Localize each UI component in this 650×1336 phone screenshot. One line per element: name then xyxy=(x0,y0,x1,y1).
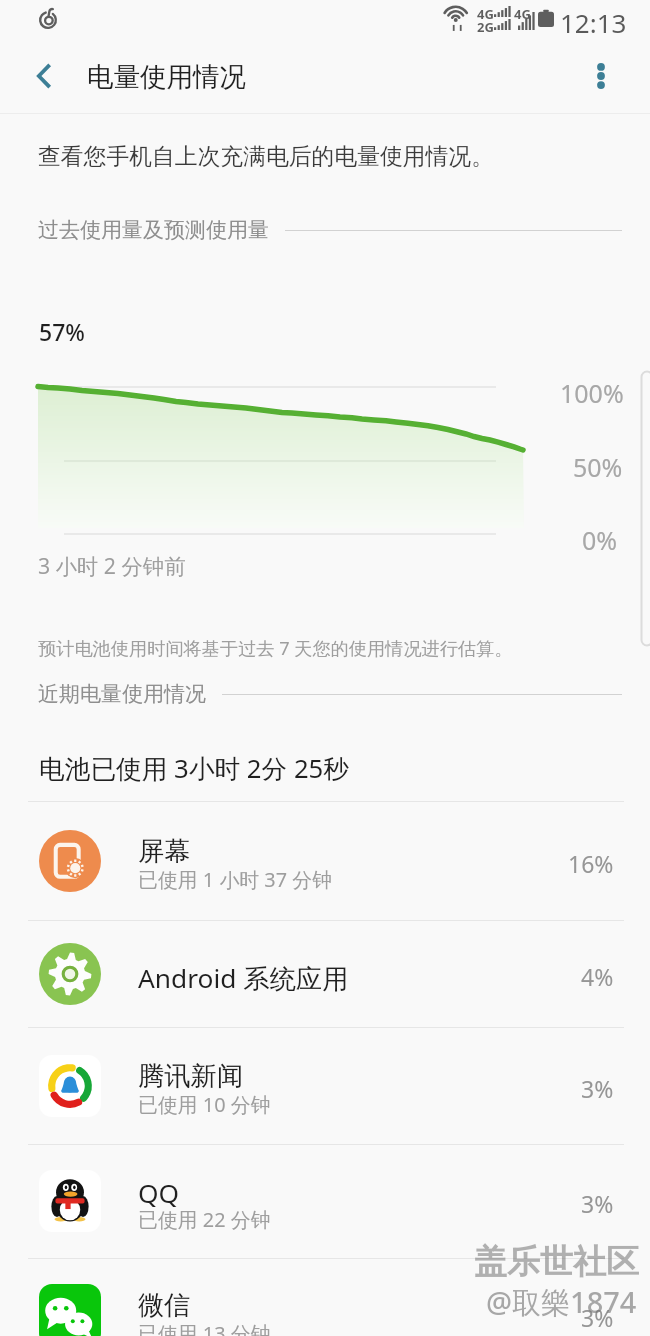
staticText: @取樂1874 xyxy=(486,1282,637,1322)
button[interactable]: Back xyxy=(22,53,68,99)
staticText: 已使用 10 分钟 xyxy=(138,1091,271,1118)
staticText: 3% xyxy=(581,1188,614,1219)
staticText: Android 系统应用 xyxy=(138,960,349,996)
button[interactable]: 微信 xyxy=(0,1258,650,1336)
button[interactable]: 屏幕 xyxy=(0,801,650,920)
staticText: 4G xyxy=(477,5,494,23)
button[interactable]: 腾讯新闻 xyxy=(0,1027,650,1144)
staticText: 查看您手机自上次充满电后的电量使用情况。 xyxy=(38,142,494,171)
staticText: 已使用 22 分钟 xyxy=(138,1206,271,1233)
staticText: 电量使用情况 xyxy=(87,60,246,93)
staticText: 微信 xyxy=(138,1289,191,1322)
staticText: 50% xyxy=(573,450,623,484)
staticText: 近期电量使用情况 xyxy=(38,681,206,707)
staticText: 已使用 1 小时 37 分钟 xyxy=(138,866,333,893)
button[interactable]: More options xyxy=(579,54,623,98)
staticText: 4% xyxy=(581,961,614,992)
staticText: 过去使用量及预测使用量 xyxy=(38,217,269,243)
staticText: 100% xyxy=(560,376,624,410)
staticText: 已使用 13 分钟 xyxy=(138,1320,271,1336)
staticText: 3% xyxy=(581,1302,614,1333)
staticText: 盖乐世社区 xyxy=(474,1241,639,1283)
staticText: 3% xyxy=(581,1073,614,1104)
staticText: 3 小时 2 分钟前 xyxy=(38,551,186,580)
staticText: 4G xyxy=(514,5,531,23)
staticText: 预计电池使用时间将基于过去 7 天您的使用情况进行估算。 xyxy=(38,636,513,661)
staticText: 电池已使用 3小时 2分 25秒 xyxy=(39,751,349,786)
staticText: 16% xyxy=(568,848,614,879)
button[interactable]: Android 系统应用 xyxy=(0,920,650,1027)
staticText: 腾讯新闻 xyxy=(138,1060,244,1093)
staticText: 0% xyxy=(582,523,618,557)
staticText: 12:13 xyxy=(560,5,627,40)
button[interactable]: QQ xyxy=(0,1144,650,1258)
staticText: 2G xyxy=(477,18,494,36)
staticText: 57% xyxy=(39,316,85,347)
staticText: QQ xyxy=(138,1175,180,1211)
staticText: 屏幕 xyxy=(138,835,191,868)
